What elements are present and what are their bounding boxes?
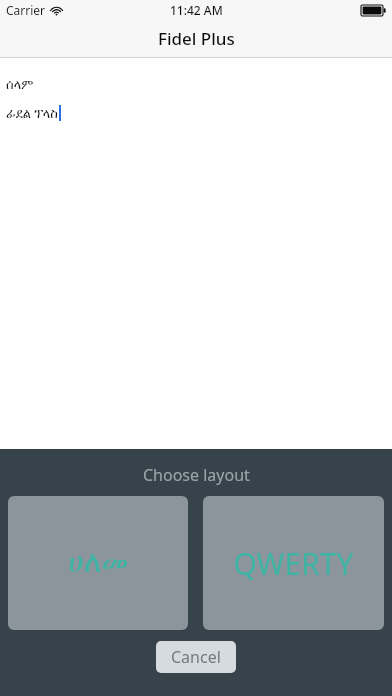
button[interactable]: QWERTY [203, 496, 384, 630]
staticText: 11:42 AM [170, 2, 223, 18]
staticText: Carrier [6, 2, 46, 18]
staticText: Choose layout [143, 464, 250, 486]
staticText: Cancel [171, 646, 221, 668]
staticText: Fidel Plus [158, 27, 235, 50]
staticText: ፊደል ፕላስ [6, 104, 58, 122]
button[interactable]: ሀለመ [8, 496, 188, 630]
staticText: ሀለመ [68, 548, 129, 578]
button[interactable]: Cancel [156, 641, 236, 673]
staticText: QWERTY [233, 543, 354, 584]
staticText: ሰላም [6, 79, 34, 92]
